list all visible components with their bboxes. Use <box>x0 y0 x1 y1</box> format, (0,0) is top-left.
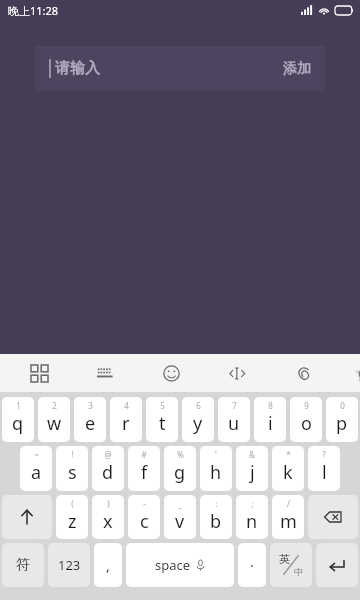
staticText: ( <box>71 498 74 509</box>
button[interactable]: Emoji <box>158 360 184 386</box>
staticText: k <box>283 460 293 485</box>
staticText: 请输入 <box>55 59 100 78</box>
button[interactable]: ( <box>56 495 88 539</box>
button[interactable]: Keyboard <box>92 360 118 386</box>
staticText: l <box>322 460 327 485</box>
button[interactable]: 请输入 <box>35 46 325 91</box>
button[interactable]: # <box>128 446 160 491</box>
button[interactable]: & <box>236 446 268 491</box>
button[interactable]: Grid <box>26 360 52 386</box>
staticText: & <box>249 449 255 460</box>
button[interactable]: Move cursor <box>224 360 250 386</box>
button[interactable]: ! <box>56 446 88 491</box>
staticText: d <box>102 460 114 485</box>
button[interactable]: @ <box>92 446 124 491</box>
staticText: p <box>336 411 348 436</box>
staticText: 1 <box>16 400 21 411</box>
button[interactable]: 6 <box>182 397 214 442</box>
staticText: r <box>122 411 130 436</box>
staticText: t <box>159 411 166 436</box>
staticText: a <box>31 460 42 485</box>
button[interactable]: Shift <box>2 495 52 539</box>
staticText: # <box>141 449 147 460</box>
staticText: 中 <box>294 566 303 577</box>
button[interactable]: Search <box>356 360 360 386</box>
button[interactable]: 3 <box>74 397 106 442</box>
button[interactable]: Backspace <box>308 495 358 539</box>
staticText: f <box>141 460 148 485</box>
button[interactable]: 2 <box>38 397 70 442</box>
button[interactable]: 5 <box>146 397 178 442</box>
button[interactable]: 4 <box>110 397 142 442</box>
staticText: ' <box>215 449 217 460</box>
staticText: , <box>106 556 110 575</box>
staticText: 7 <box>232 400 237 411</box>
staticText: * <box>286 449 291 460</box>
staticText: s <box>68 460 77 485</box>
button[interactable]: 英 <box>270 543 312 587</box>
staticText: y <box>193 411 203 436</box>
staticText: o <box>301 411 312 436</box>
staticText: space <box>155 556 191 574</box>
button[interactable]: : <box>200 495 232 539</box>
button[interactable]: / <box>272 495 304 539</box>
staticText: i <box>268 411 273 436</box>
button[interactable]: _ <box>164 495 196 539</box>
staticText: 123 <box>58 556 81 574</box>
staticText: 6 <box>196 400 201 411</box>
button[interactable]: 9 <box>290 397 322 442</box>
staticText: ? <box>322 449 326 460</box>
button[interactable]: , <box>94 543 122 587</box>
staticText: % <box>177 449 184 460</box>
button[interactable]: % <box>164 446 196 491</box>
button[interactable]: 123 <box>48 543 90 587</box>
button[interactable]: * <box>272 446 304 491</box>
staticText: n <box>246 509 258 534</box>
staticText: 0 <box>340 400 345 411</box>
staticText: : <box>215 498 218 509</box>
staticText: · <box>250 556 254 575</box>
staticText: 9 <box>304 400 309 411</box>
staticText: q <box>12 411 24 436</box>
button[interactable]: ? <box>308 446 340 491</box>
staticText: ~ <box>34 449 39 460</box>
staticText: c <box>140 509 149 534</box>
button[interactable]: - <box>128 495 160 539</box>
staticText: e <box>85 411 96 436</box>
staticText: w <box>47 411 62 436</box>
staticText: 3 <box>88 400 93 411</box>
staticText: j <box>250 460 255 485</box>
staticText: / <box>287 498 290 509</box>
staticText: z <box>68 509 77 534</box>
button[interactable]: ) <box>92 495 124 539</box>
button[interactable]: 0 <box>326 397 358 442</box>
staticText: u <box>228 411 240 436</box>
staticText: m <box>280 509 297 534</box>
staticText: 晚上11:28 <box>8 3 59 18</box>
button[interactable]: Clipboard <box>290 360 316 386</box>
staticText: h <box>210 460 222 485</box>
staticText: 英 <box>279 552 290 566</box>
button[interactable]: 8 <box>254 397 286 442</box>
button[interactable]: space <box>126 543 234 587</box>
staticText: ) <box>107 498 110 509</box>
button[interactable]: ' <box>200 446 232 491</box>
button[interactable]: 符 <box>2 543 44 587</box>
staticText: 4 <box>124 400 129 411</box>
button[interactable]: · <box>238 543 266 587</box>
staticText: ; <box>251 498 254 509</box>
staticText: x <box>103 509 113 534</box>
staticText: 5 <box>160 400 165 411</box>
button[interactable]: Enter <box>316 543 358 587</box>
button[interactable]: ; <box>236 495 268 539</box>
staticText: 8 <box>268 400 273 411</box>
staticText: ! <box>71 449 74 460</box>
button[interactable]: 7 <box>218 397 250 442</box>
staticText: 符 <box>16 556 30 574</box>
staticText: v <box>175 509 185 534</box>
button[interactable]: 1 <box>2 397 34 442</box>
staticText: _ <box>178 498 182 509</box>
button[interactable]: 添加 <box>283 60 311 78</box>
staticText: 2 <box>52 400 57 411</box>
button[interactable]: ~ <box>20 446 52 491</box>
